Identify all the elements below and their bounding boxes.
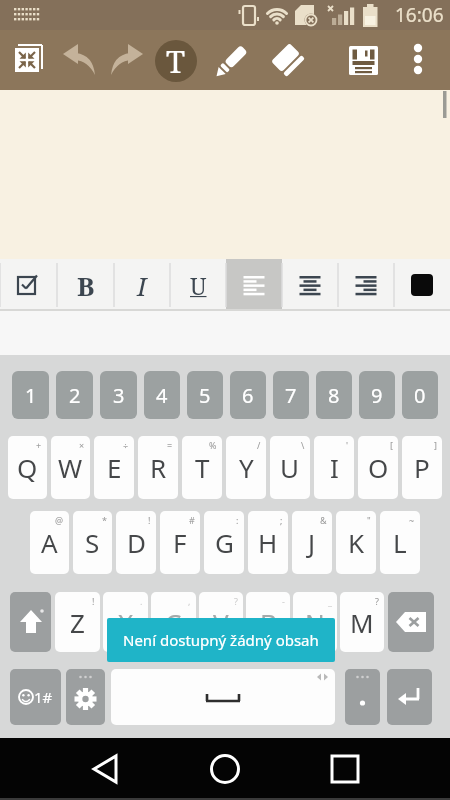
button[interactable] — [268, 40, 308, 80]
button[interactable]: 6 — [230, 371, 266, 419]
button[interactable]: 9 — [359, 371, 395, 419]
button[interactable] — [388, 592, 434, 652]
button[interactable]: U — [270, 436, 310, 499]
button[interactable]: 1# — [10, 669, 61, 725]
staticText: @ — [55, 514, 64, 526]
button[interactable]: T — [155, 40, 197, 82]
staticText: - — [282, 595, 285, 607]
button[interactable]: W — [51, 436, 90, 499]
button[interactable]: 5 — [187, 371, 223, 419]
staticText: 16:06 — [395, 2, 444, 28]
button[interactable]: M — [340, 592, 384, 652]
staticText: 8 — [328, 382, 340, 409]
staticText: Q — [17, 450, 38, 485]
button[interactable]: L — [380, 511, 420, 574]
button[interactable]: J — [292, 511, 332, 574]
button[interactable] — [62, 43, 102, 79]
button[interactable]: Q — [8, 436, 47, 499]
staticText: U — [190, 270, 207, 301]
button[interactable] — [349, 46, 379, 76]
staticText: J — [308, 525, 316, 560]
staticText: V — [213, 605, 229, 640]
staticText: K — [348, 525, 365, 560]
staticText: G — [215, 525, 234, 560]
button[interactable]: F — [160, 511, 200, 574]
button[interactable] — [226, 259, 282, 311]
button[interactable]: 3 — [100, 371, 137, 419]
staticText: ' — [346, 439, 349, 451]
button[interactable]: 1 — [12, 371, 49, 419]
button[interactable] — [338, 259, 394, 311]
staticText: \ — [301, 439, 305, 451]
button[interactable] — [10, 592, 51, 652]
button[interactable] — [8, 40, 48, 80]
button[interactable]: P — [402, 436, 442, 499]
button[interactable]: I — [114, 259, 170, 311]
staticText: ÷ — [123, 439, 129, 451]
button[interactable]: H — [248, 511, 288, 574]
button[interactable]: 8 — [316, 371, 352, 419]
button[interactable]: V — [199, 592, 243, 652]
button[interactable]: S — [73, 511, 112, 574]
button[interactable] — [394, 259, 450, 311]
button[interactable]: E — [94, 436, 134, 499]
button[interactable] — [317, 748, 373, 790]
staticText: 1# — [34, 687, 53, 707]
staticText: 5 — [199, 382, 211, 409]
staticText: " — [367, 514, 371, 526]
button[interactable]: U — [170, 259, 226, 311]
button[interactable]: D — [116, 511, 156, 574]
button[interactable] — [197, 748, 253, 790]
button[interactable]: 4 — [144, 371, 180, 419]
staticText: T — [166, 40, 186, 82]
button[interactable]: N — [293, 592, 337, 652]
button[interactable] — [387, 669, 432, 725]
button[interactable] — [80, 748, 136, 790]
button[interactable] — [211, 42, 251, 82]
button[interactable]: K — [336, 511, 376, 574]
button[interactable]: I — [314, 436, 354, 499]
staticText: * — [102, 514, 107, 526]
button[interactable] — [282, 259, 338, 311]
button[interactable] — [345, 669, 380, 725]
staticText: % — [209, 439, 217, 451]
button[interactable]: C — [151, 592, 196, 652]
button[interactable]: Z — [55, 592, 100, 652]
staticText: + — [36, 439, 42, 451]
button[interactable]: Y — [226, 436, 266, 499]
staticText: Y — [239, 450, 254, 485]
staticText: 1 — [25, 382, 37, 409]
staticText: 6 — [242, 382, 254, 409]
button[interactable] — [0, 259, 57, 311]
staticText: / — [257, 439, 261, 451]
button[interactable]: B — [57, 259, 114, 311]
button[interactable]: T — [182, 436, 222, 499]
staticText: L — [393, 525, 407, 560]
button[interactable] — [402, 42, 434, 78]
staticText: C — [165, 605, 182, 640]
staticText: I — [137, 268, 147, 303]
button[interactable] — [106, 43, 146, 79]
staticText: X — [118, 605, 134, 640]
staticText: & — [320, 514, 327, 526]
staticText: 7 — [285, 382, 297, 409]
staticText: H — [258, 525, 278, 560]
button[interactable]: 7 — [273, 371, 309, 419]
staticText: R — [150, 450, 167, 485]
button[interactable]: 2 — [56, 371, 93, 419]
staticText: ; — [280, 514, 283, 526]
button[interactable]: R — [138, 436, 178, 499]
button[interactable] — [66, 669, 105, 725]
staticText: Není dostupný žádný obsah — [123, 630, 319, 650]
button[interactable]: 0 — [402, 371, 438, 419]
button[interactable] — [111, 669, 335, 725]
button[interactable]: B — [246, 592, 290, 652]
staticText: ! — [92, 595, 95, 607]
staticText: O — [368, 450, 389, 485]
button[interactable]: O — [358, 436, 398, 499]
button[interactable]: G — [204, 511, 244, 574]
staticText: . — [140, 595, 143, 607]
button[interactable]: A — [30, 511, 69, 574]
staticText: = — [167, 439, 173, 451]
button[interactable]: X — [103, 592, 148, 652]
